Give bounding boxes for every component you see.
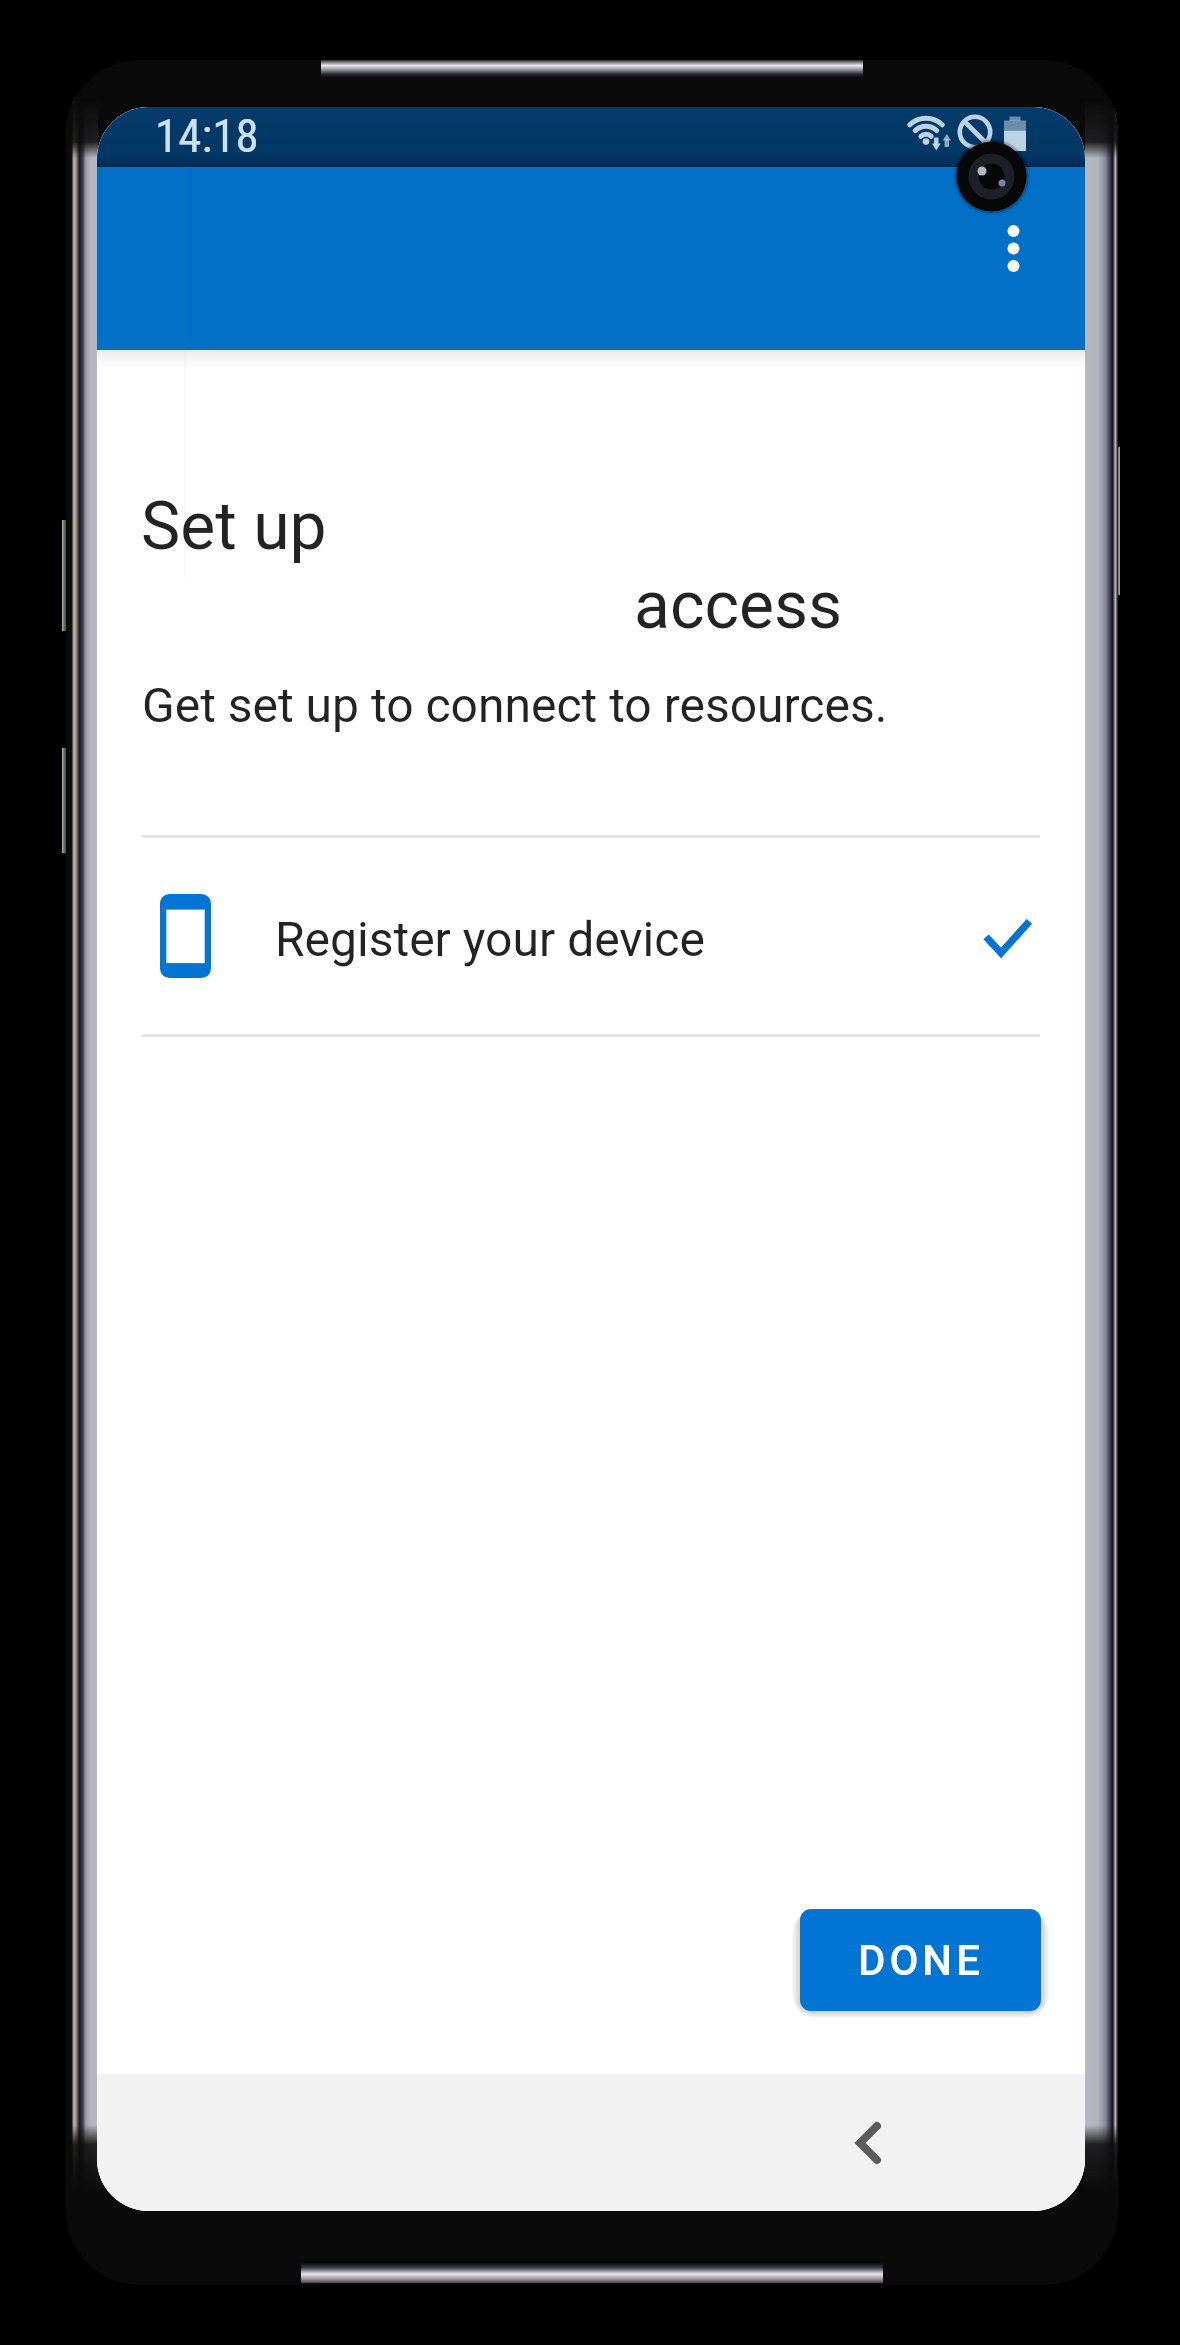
button[interactable]: Register your device	[97, 841, 1085, 1037]
staticText: Set up	[141, 488, 327, 565]
staticText: DONE	[858, 1936, 984, 1985]
button[interactable]: Back	[822, 2097, 914, 2189]
staticText: access	[634, 567, 843, 644]
button[interactable]: More options	[973, 208, 1053, 288]
staticText: Get set up to connect to resources.	[142, 677, 888, 733]
staticText: Register your device	[275, 911, 705, 967]
button[interactable]: DONE	[800, 1909, 1041, 2011]
staticText: 14:18	[155, 108, 259, 163]
